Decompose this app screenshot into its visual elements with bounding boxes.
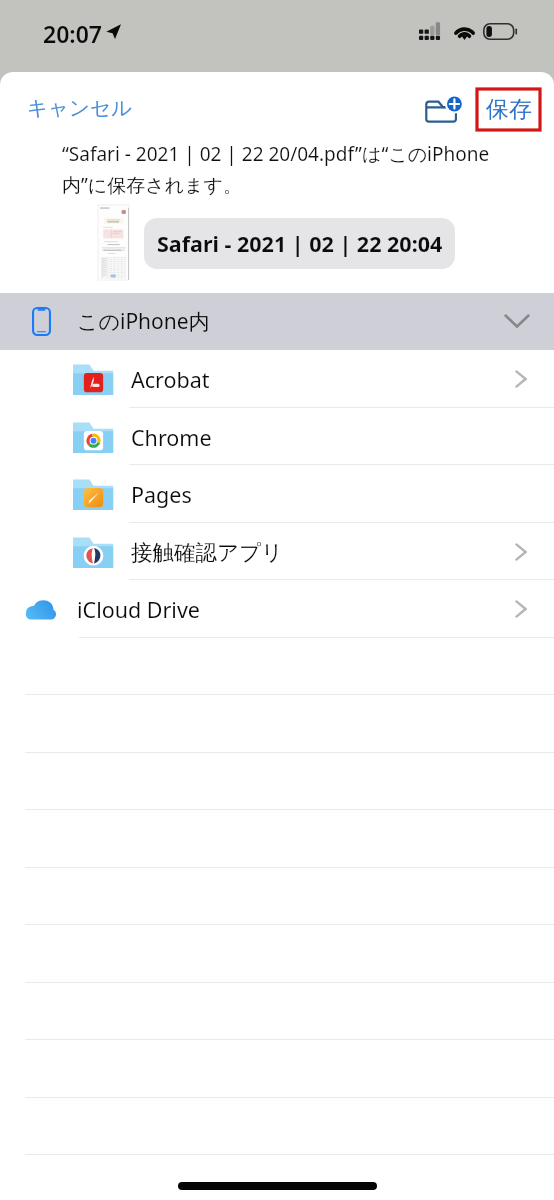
button[interactable]: 接触確認アプリ: [0, 523, 554, 581]
button[interactable]: Acrobat: [0, 350, 554, 408]
button[interactable]: このiPhone内: [0, 293, 554, 350]
staticText: 保存: [486, 95, 532, 124]
button[interactable]: Pages: [0, 465, 554, 523]
staticText: このiPhone内: [77, 307, 210, 336]
staticText: 接触確認アプリ: [131, 539, 284, 566]
staticText: 20:07: [43, 18, 102, 49]
staticText: キャンセル: [27, 95, 132, 121]
staticText: Chrome: [131, 423, 212, 452]
button[interactable]: iCloud Drive: [0, 580, 554, 638]
staticText: iCloud Drive: [77, 595, 200, 624]
button[interactable]: キャンセル: [10, 88, 149, 128]
button[interactable]: 保存: [477, 89, 540, 130]
button[interactable]: New folder: [412, 85, 474, 135]
staticText: Safari - 2021 | 02 | 22 20:04: [157, 229, 443, 258]
staticText: Acrobat: [131, 365, 210, 394]
button[interactable]: Chrome: [0, 408, 554, 466]
button[interactable]: Safari - 2021 | 02 | 22 20:04: [144, 218, 455, 269]
staticText: “Safari - 2021 | 02 | 22 20/04.pdf”は“このi…: [62, 141, 494, 197]
staticText: Pages: [131, 480, 192, 509]
